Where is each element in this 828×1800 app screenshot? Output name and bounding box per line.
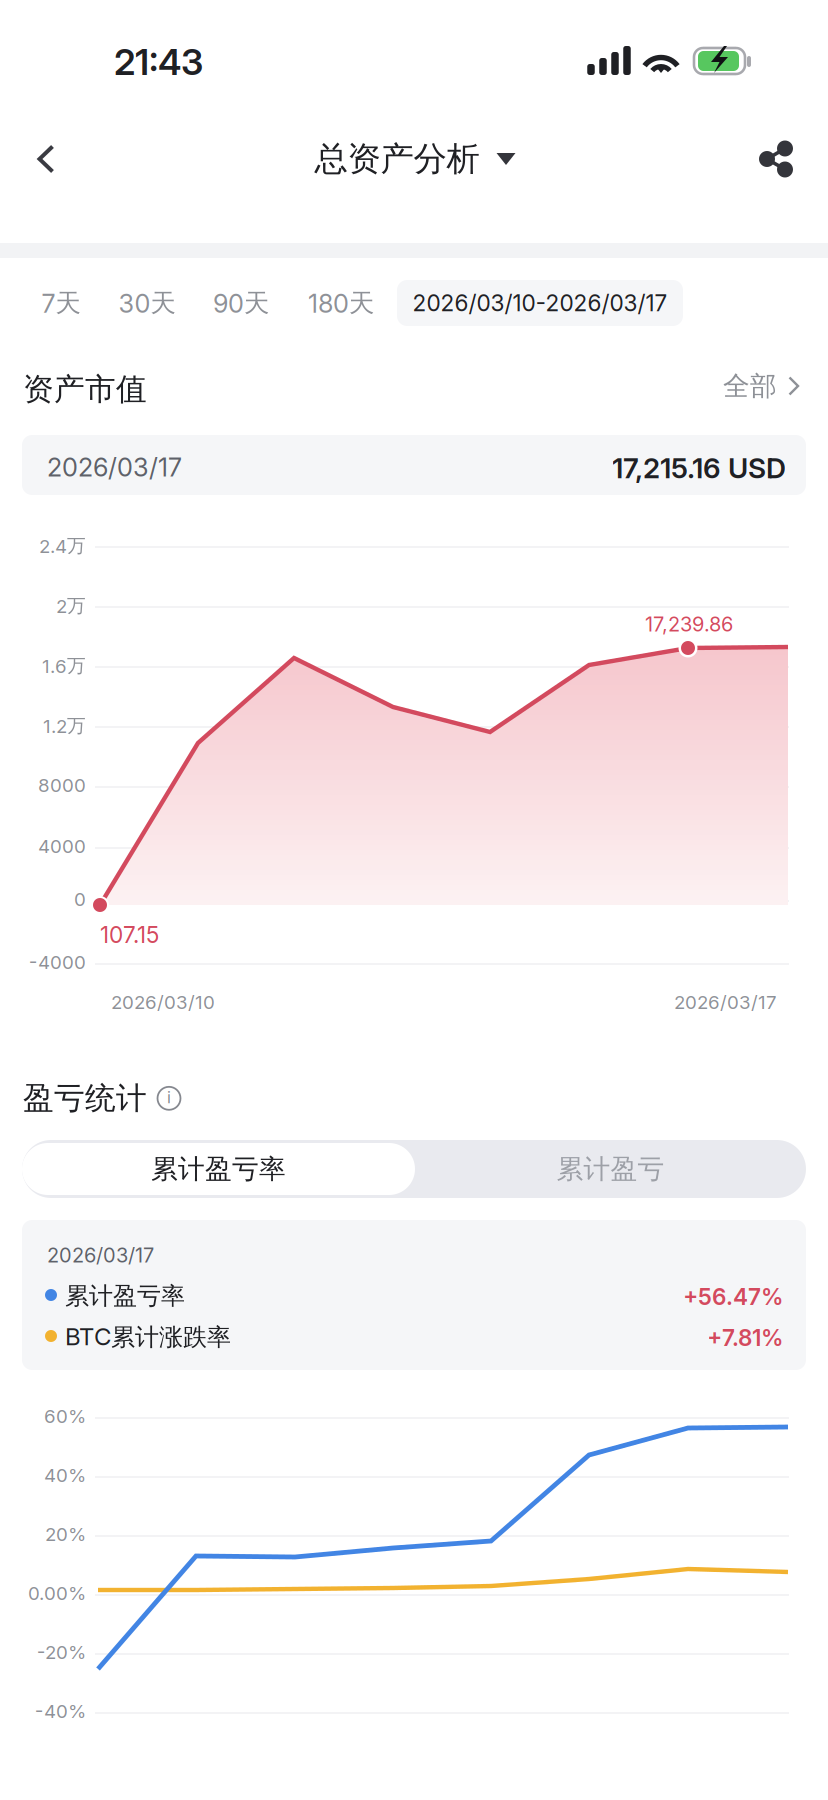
staticText: +56.47% [683,1283,783,1310]
button[interactable]: 90天 [195,275,287,331]
staticText: 2026/03/17 [674,991,777,1014]
staticText: 4000 [38,835,86,858]
staticText: 40% [44,1464,86,1487]
button[interactable]: 7天 [23,275,99,331]
staticText: 2万 [56,594,86,617]
staticText: 2026/03/10-2026/03/17 [412,289,667,317]
staticText: i [167,1088,171,1107]
staticText: 180天 [308,287,374,319]
staticText: 累计盈亏率 [65,1281,185,1311]
staticText: 90天 [213,287,269,319]
staticText: 累计盈亏 [556,1152,664,1186]
staticText: 21:43 [114,40,203,84]
button[interactable]: 180天 [287,275,395,331]
staticText: 8000 [38,774,86,797]
staticText: 17,215.16 USD [612,451,786,485]
button[interactable]: 30天 [101,275,193,331]
staticText: 盈亏统计 [23,1079,147,1118]
button[interactable]: 累计盈亏 [415,1143,806,1195]
staticText: 2026/03/10 [111,991,215,1014]
staticText: 2.4万 [39,534,86,557]
staticText: 资产市值 [23,370,147,409]
staticText: -4000 [29,951,86,974]
staticText: 7天 [41,287,80,319]
staticText: 60% [44,1405,86,1428]
staticText: +7.81% [707,1324,783,1351]
button[interactable]: 总资产分析 [310,115,520,203]
button[interactable]: 全部 [700,362,800,410]
staticText: -20% [37,1641,86,1664]
staticText: 总资产分析 [314,138,479,180]
staticText: 1.6万 [42,654,86,677]
staticText: 107.15 [100,921,159,948]
button[interactable]: Share [738,115,814,203]
staticText: 30天 [118,287,175,319]
button[interactable]: 2026/03/10-2026/03/17 [397,280,683,326]
staticText: 1.2万 [43,714,86,737]
staticText: 全部 [723,369,777,403]
staticText: 2026/03/17 [47,452,182,483]
staticText: -40% [35,1700,86,1723]
staticText: 20% [45,1523,86,1546]
staticText: BTC累计涨跌率 [65,1322,231,1352]
button[interactable]: 累计盈亏率 [22,1143,415,1195]
button[interactable]: Back [8,115,84,203]
staticText: 0.00% [28,1582,86,1605]
staticText: 17,239.86 [645,612,733,636]
staticText: 2026/03/17 [47,1243,154,1267]
staticText: 0 [74,888,86,911]
staticText: 累计盈亏率 [151,1152,286,1186]
